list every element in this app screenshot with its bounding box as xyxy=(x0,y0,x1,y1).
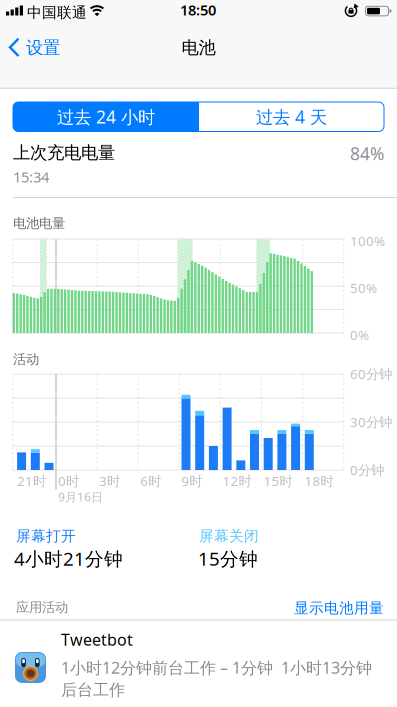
staticText: 6时 xyxy=(140,472,161,490)
staticText: 应用活动 xyxy=(16,599,68,615)
staticText: 电池电量 xyxy=(13,215,65,231)
staticText: 1小时12分钟前台工作 – 1分钟 1小时13分钟 xyxy=(61,657,372,678)
button[interactable]: 显示电池用量 xyxy=(294,599,384,617)
staticText: 过去 24 小时 xyxy=(57,105,155,128)
staticText: 30分钟 xyxy=(350,413,392,431)
staticText: 屏幕打开 xyxy=(16,527,76,545)
staticText: 9时 xyxy=(181,472,202,490)
staticText: 屏幕关闭 xyxy=(199,527,259,545)
staticText: 18:50 xyxy=(180,0,216,19)
staticText: 50% xyxy=(350,279,377,297)
button[interactable]: 过去 4 天 xyxy=(199,102,384,131)
staticText: 4小时21分钟 xyxy=(14,546,123,571)
staticText: Tweetbot xyxy=(61,629,133,650)
staticText: 84% xyxy=(350,142,384,165)
staticText: 0% xyxy=(350,326,369,344)
staticText: 18时 xyxy=(305,472,334,490)
staticText: 显示电池用量 xyxy=(294,599,384,617)
staticText: 上次充电电量 xyxy=(13,142,115,163)
staticText: 15时 xyxy=(263,472,292,490)
staticText: 后台工作 xyxy=(61,680,125,700)
staticText: 0分钟 xyxy=(350,461,384,479)
staticText: 15:34 xyxy=(13,167,49,186)
staticText: 3时 xyxy=(99,472,120,490)
staticText: 60分钟 xyxy=(350,365,392,383)
staticText: 100% xyxy=(350,232,385,250)
button[interactable]: 设置 xyxy=(8,37,60,58)
staticText: 电池 xyxy=(181,37,215,58)
staticText: 15分钟 xyxy=(198,546,258,571)
staticText: 9月16日 xyxy=(58,489,103,505)
staticText: 活动 xyxy=(13,351,39,367)
staticText: 12时 xyxy=(222,472,251,490)
staticText: 0时 xyxy=(58,472,79,490)
staticText: 过去 4 天 xyxy=(256,105,327,128)
staticText: 中国联通 xyxy=(27,3,87,21)
button[interactable]: Tweetbot xyxy=(0,620,397,707)
staticText: 21时 xyxy=(17,472,46,490)
button[interactable]: 过去 24 小时 xyxy=(13,102,199,131)
staticText: 设置 xyxy=(26,37,60,58)
